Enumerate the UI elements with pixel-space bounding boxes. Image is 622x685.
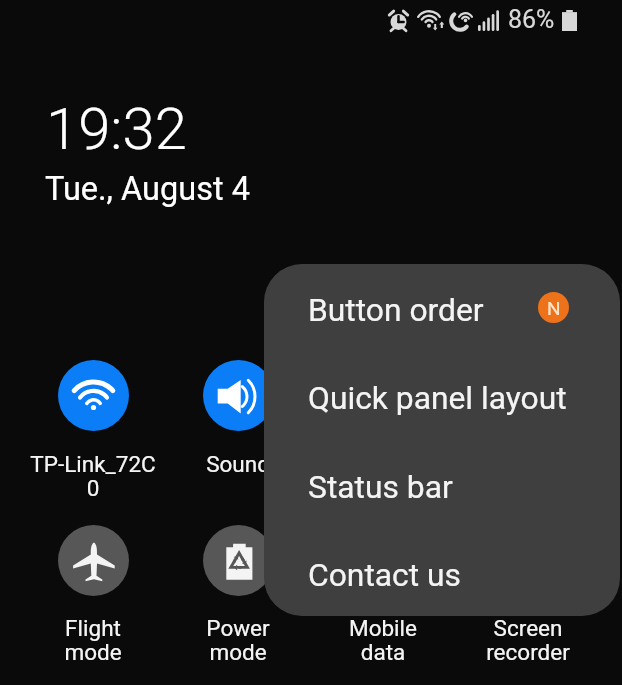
- button[interactable]: Wi-Fi: [21, 360, 165, 431]
- other: Power mode: [203, 525, 274, 596]
- staticText: 86%: [508, 5, 555, 34]
- staticText: Button order: [308, 291, 484, 328]
- button[interactable]: Flight mode: [21, 525, 165, 596]
- staticText: 19:32: [46, 95, 187, 163]
- other: Bluetooth: [348, 360, 419, 431]
- other: Flight mode: [58, 525, 129, 596]
- other: Sound: [203, 360, 274, 431]
- button[interactable]: Contact us: [264, 529, 620, 616]
- button[interactable]: Status bar: [264, 441, 620, 531]
- button[interactable]: Power mode: [166, 525, 310, 596]
- button[interactable]: Button order: [264, 264, 620, 354]
- staticText: Status bar: [308, 468, 453, 505]
- button[interactable]: Quick panel layout: [264, 352, 620, 442]
- staticText: Contact us: [308, 556, 461, 593]
- other: Location: [493, 360, 564, 431]
- staticText: Power mode: [206, 615, 270, 665]
- button[interactable]: Screen recorder: [456, 525, 600, 596]
- button[interactable]: Sound: [166, 360, 310, 431]
- other: Mobile data: [348, 525, 419, 596]
- staticText: Tue., August 4: [45, 170, 250, 208]
- button[interactable]: Mobile data: [311, 525, 455, 596]
- staticText: N: [547, 297, 561, 319]
- staticText: Mobile data: [349, 615, 417, 665]
- button[interactable]: Location: [456, 360, 600, 431]
- staticText: Quick panel layout: [308, 379, 567, 416]
- staticText: TP-Link_72C 0: [30, 451, 156, 501]
- staticText: Screen recorder: [486, 615, 570, 665]
- other: Wi-Fi: [58, 360, 129, 431]
- staticText: Flight mode: [64, 615, 122, 665]
- button[interactable]: Bluetooth: [311, 360, 455, 431]
- staticText: Bluetooth: [335, 451, 432, 477]
- staticText: Sound: [206, 451, 270, 477]
